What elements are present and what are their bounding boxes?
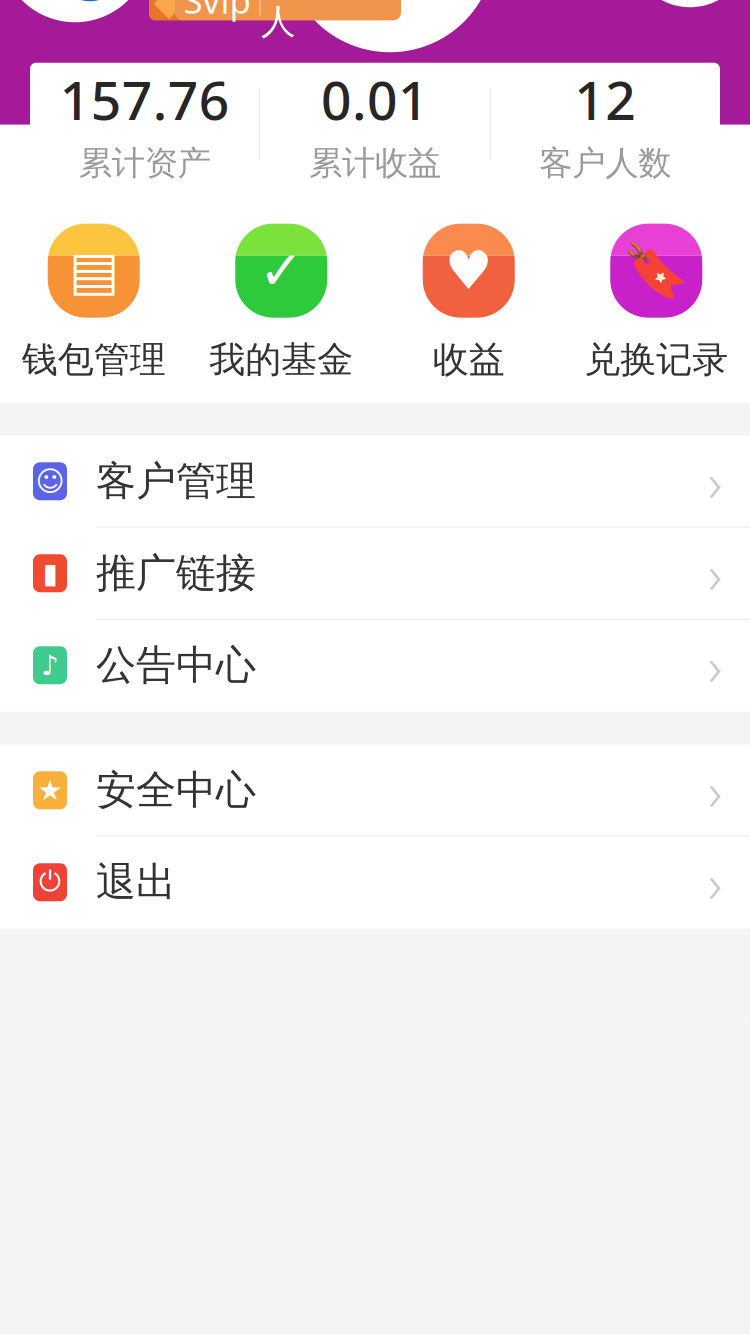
staticText: 收益 [433, 338, 505, 382]
button[interactable]: ♪ [0, 620, 750, 712]
staticText: ▤ [69, 240, 119, 301]
staticText: 12 [574, 64, 636, 135]
staticText: 累计收益 [309, 143, 441, 184]
staticText: 初级经纪人 [261, 0, 401, 43]
staticText: 推广链接 [96, 549, 256, 598]
staticText: › [708, 847, 722, 918]
button[interactable]: ★ [0, 745, 750, 837]
staticText: › [708, 630, 722, 701]
staticText: › [708, 538, 722, 609]
staticText: ♥ [445, 240, 493, 301]
staticText: 客户管理 [96, 457, 256, 506]
button[interactable]: 🔖 [562, 224, 750, 382]
staticText: 0.01 [321, 64, 429, 135]
button[interactable]: ♥ [375, 224, 562, 382]
staticText: ▮ [42, 557, 57, 589]
staticText: 🔖 [623, 240, 689, 301]
staticText: 安全中心 [96, 766, 256, 815]
staticText: 退出 [96, 858, 176, 907]
staticText: 我的基金 [209, 338, 353, 382]
staticText: 兑换记录 [584, 338, 728, 382]
staticText: ♪ [41, 649, 59, 681]
button[interactable]: ✓ [187, 224, 375, 382]
staticText: › [708, 446, 722, 517]
button[interactable]: ▮ [0, 528, 750, 620]
staticText: ✓ [259, 240, 304, 301]
staticText: ★ [37, 774, 62, 806]
staticText: ◆ [153, 0, 184, 23]
staticText: 客户人数 [539, 143, 671, 184]
staticText: 钱包管理 [22, 338, 166, 382]
button[interactable]: ▤ [0, 224, 187, 382]
staticText: ☺ [35, 465, 64, 497]
staticText: 157.76 [60, 64, 230, 135]
button[interactable]: ☺ [0, 436, 750, 528]
button[interactable]: ⏻ [0, 837, 750, 929]
staticText: › [708, 755, 722, 826]
staticText: Svip [183, 0, 250, 23]
staticText: 公告中心 [96, 641, 256, 690]
staticText: 累计资产 [79, 143, 211, 184]
staticText: ⏻ [39, 869, 61, 896]
